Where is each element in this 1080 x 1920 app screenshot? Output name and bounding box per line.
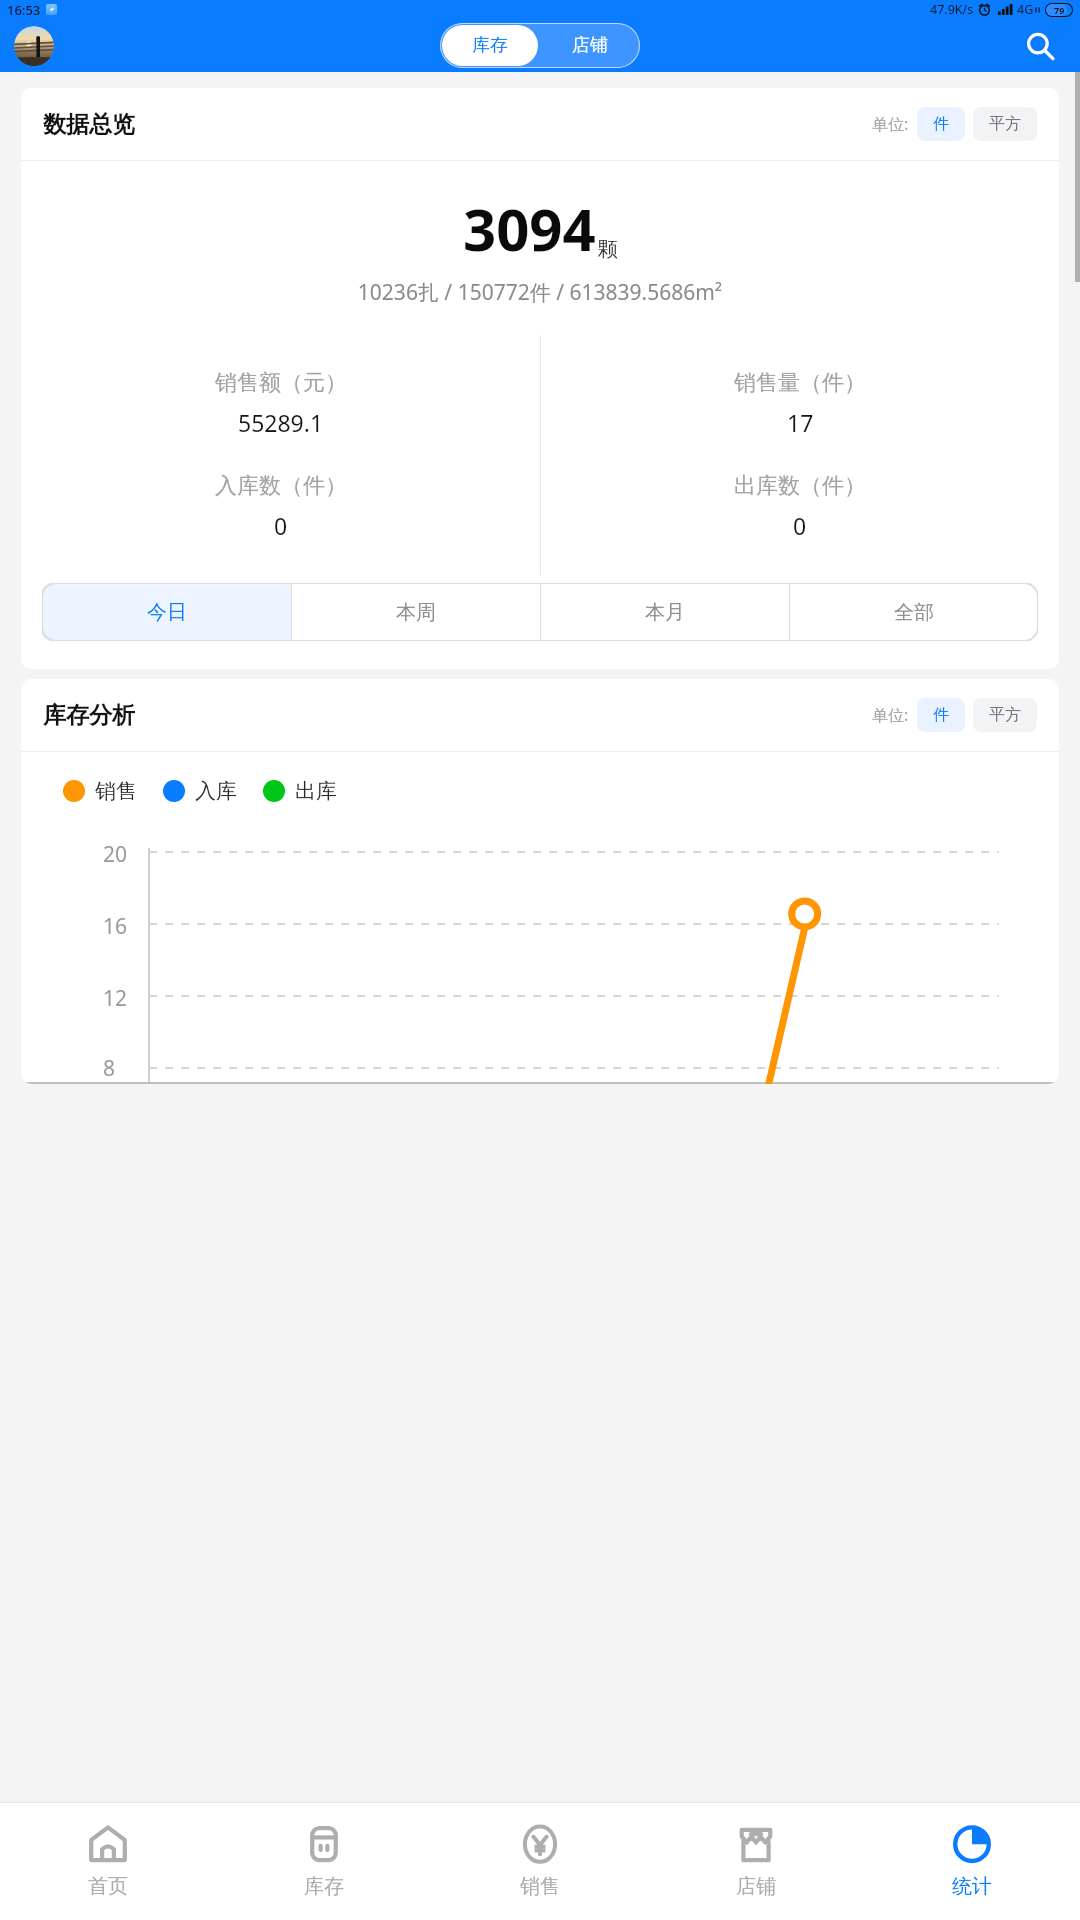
button[interactable]: Profile: [14, 26, 54, 66]
staticText: 店铺: [572, 34, 608, 57]
staticText: 47.9K/s: [930, 1, 974, 18]
staticText: 库存分析: [43, 701, 135, 730]
staticText: 数据总览: [43, 110, 135, 139]
staticText: 库存: [472, 34, 508, 57]
staticText: 出库: [295, 778, 337, 804]
staticText: 平方: [989, 114, 1021, 134]
button[interactable]: 件: [917, 107, 965, 141]
staticText: 颗: [598, 237, 618, 262]
button[interactable]: 全部: [789, 583, 1038, 641]
button[interactable]: Search: [1018, 24, 1062, 68]
staticText: 销售: [520, 1874, 560, 1899]
button[interactable]: 本周: [291, 583, 540, 641]
staticText: 店铺: [736, 1874, 776, 1899]
staticText: 销售额（元）: [215, 369, 347, 397]
staticText: 10236扎 / 150772件 / 613839.5686m²: [21, 278, 1059, 307]
staticText: 0: [274, 510, 288, 541]
button[interactable]: 本月: [540, 583, 789, 641]
staticText: 4G: [1017, 1, 1034, 18]
staticText: 16:53: [7, 1, 41, 19]
staticText: 3094: [463, 189, 596, 268]
staticText: 20: [103, 840, 128, 869]
staticText: 12: [103, 984, 128, 1013]
staticText: 单位:: [872, 704, 909, 726]
staticText: 库存: [304, 1874, 344, 1899]
button[interactable]: 店铺: [540, 23, 640, 68]
staticText: 本周: [396, 600, 436, 625]
staticText: 本月: [645, 600, 685, 625]
staticText: 出库数（件）: [734, 472, 866, 500]
button[interactable]: 销售: [432, 1802, 648, 1920]
staticText: 16: [103, 912, 128, 941]
staticText: 销售: [95, 778, 137, 804]
staticText: 统计: [952, 1874, 992, 1899]
staticText: 首页: [88, 1874, 128, 1899]
button[interactable]: 今日: [42, 583, 291, 641]
staticText: 8: [103, 1054, 116, 1083]
staticText: 销售量（件）: [734, 369, 866, 397]
staticText: 入库数（件）: [215, 472, 347, 500]
button[interactable]: 库存: [216, 1802, 432, 1920]
button[interactable]: 平方: [973, 698, 1037, 732]
staticText: 件: [933, 114, 949, 134]
staticText: 件: [933, 705, 949, 725]
button[interactable]: 平方: [973, 107, 1037, 141]
staticText: 单位:: [872, 113, 909, 135]
staticText: 55289.1: [238, 407, 324, 438]
button[interactable]: 店铺: [648, 1802, 864, 1920]
button[interactable]: 件: [917, 698, 965, 732]
staticText: 0: [793, 510, 807, 541]
button[interactable]: 统计: [864, 1802, 1080, 1920]
staticText: 平方: [989, 705, 1021, 725]
staticText: 全部: [894, 600, 934, 625]
staticText: 今日: [147, 600, 187, 625]
button[interactable]: 首页: [0, 1802, 216, 1920]
staticText: 17: [787, 407, 814, 438]
staticText: 入库: [195, 778, 237, 804]
button[interactable]: 库存: [442, 25, 538, 66]
staticText: 79: [1054, 4, 1065, 16]
